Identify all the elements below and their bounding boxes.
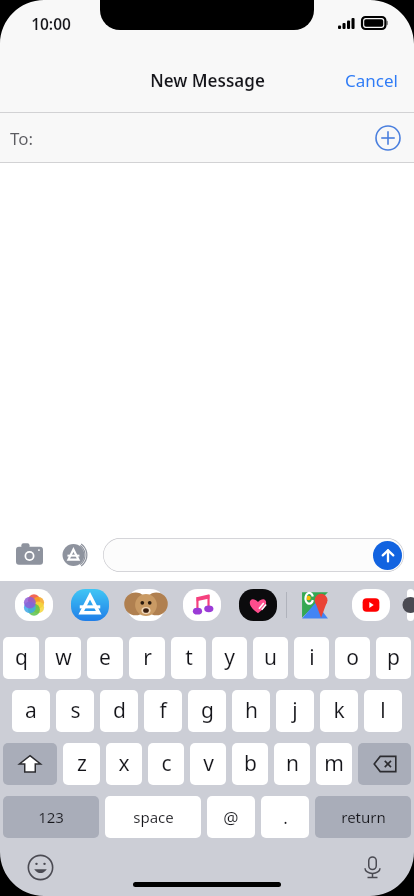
staticText: z xyxy=(77,749,87,778)
button[interactable]: f xyxy=(144,690,182,732)
staticText: w xyxy=(55,643,72,672)
staticText: h xyxy=(245,696,258,725)
button[interactable]: Dictation xyxy=(352,847,392,887)
staticText: q xyxy=(15,643,28,672)
staticText: Cancel xyxy=(345,69,398,92)
button[interactable]: w xyxy=(45,637,81,679)
staticText: c xyxy=(161,749,172,778)
staticText: v xyxy=(203,749,214,778)
staticText: To: xyxy=(10,127,34,150)
button[interactable]: App Store xyxy=(70,587,110,623)
staticText: x xyxy=(118,749,130,778)
staticText: j xyxy=(292,696,298,725)
button[interactable]: y xyxy=(212,637,247,679)
staticText: t xyxy=(185,643,193,672)
button[interactable]: Shift xyxy=(3,743,57,785)
button[interactable]: YouTube xyxy=(351,587,391,623)
button[interactable]: c xyxy=(148,743,184,785)
staticText: e xyxy=(99,643,111,672)
staticText: f xyxy=(159,696,167,725)
staticText: r xyxy=(143,643,152,672)
button[interactable]: Send xyxy=(103,538,404,572)
staticText: d xyxy=(113,696,126,725)
staticText: 10:00 xyxy=(31,13,71,34)
button[interactable]: r xyxy=(129,637,165,679)
staticText: 123 xyxy=(38,807,64,827)
staticText: s xyxy=(70,696,81,725)
button[interactable]: return xyxy=(315,796,411,838)
button[interactable]: x xyxy=(106,743,142,785)
button[interactable]: q xyxy=(3,637,39,679)
button[interactable]: Emoji xyxy=(20,847,60,887)
staticText: i xyxy=(309,643,315,672)
button[interactable]: Music xyxy=(182,587,222,623)
button[interactable]: z xyxy=(63,743,100,785)
button[interactable]: . xyxy=(261,796,309,838)
button[interactable]: s xyxy=(56,690,94,732)
button[interactable]: j xyxy=(276,690,314,732)
button[interactable]: Maps xyxy=(295,587,335,623)
staticText: @ xyxy=(223,806,239,829)
staticText: New Message xyxy=(150,69,265,92)
button[interactable]: 123 xyxy=(3,796,99,838)
staticText: return xyxy=(341,807,386,827)
staticText: space xyxy=(133,807,174,827)
button[interactable]: Add contact xyxy=(372,122,404,154)
staticText: a xyxy=(25,696,37,725)
staticText: k xyxy=(333,696,345,725)
button[interactable]: h xyxy=(232,690,270,732)
button[interactable]: g xyxy=(188,690,226,732)
staticText: g xyxy=(201,696,214,725)
button[interactable]: @ xyxy=(207,796,255,838)
button[interactable]: t xyxy=(171,637,206,679)
staticText: n xyxy=(286,749,299,778)
button[interactable]: o xyxy=(335,637,370,679)
staticText: b xyxy=(244,749,257,778)
staticText: m xyxy=(324,749,344,778)
button[interactable]: v xyxy=(190,743,226,785)
button[interactable]: e xyxy=(87,637,123,679)
button[interactable]: Backspace xyxy=(358,743,411,785)
button[interactable]: b xyxy=(232,743,268,785)
button[interactable]: a xyxy=(12,690,50,732)
button[interactable]: Digital Touch xyxy=(238,587,278,623)
staticText: u xyxy=(264,643,277,672)
button[interactable]: space xyxy=(105,796,201,838)
staticText: l xyxy=(380,696,386,725)
button[interactable]: More xyxy=(407,587,414,623)
button[interactable]: m xyxy=(316,743,352,785)
button[interactable]: k xyxy=(320,690,358,732)
button[interactable]: Send xyxy=(373,541,402,570)
staticText: o xyxy=(346,643,359,672)
button[interactable]: d xyxy=(100,690,138,732)
button[interactable]: Memoji xyxy=(126,587,166,623)
button[interactable]: p xyxy=(376,637,411,679)
button[interactable]: Camera xyxy=(10,536,48,574)
button[interactable]: Photos xyxy=(14,587,54,623)
button[interactable]: u xyxy=(253,637,288,679)
staticText: . xyxy=(283,806,288,829)
button[interactable]: l xyxy=(364,690,402,732)
button[interactable]: Cancel xyxy=(329,59,414,102)
staticText: p xyxy=(387,643,400,672)
button[interactable]: Apps xyxy=(56,536,94,574)
button[interactable]: i xyxy=(294,637,329,679)
button[interactable]: n xyxy=(274,743,310,785)
staticText: y xyxy=(224,643,235,672)
